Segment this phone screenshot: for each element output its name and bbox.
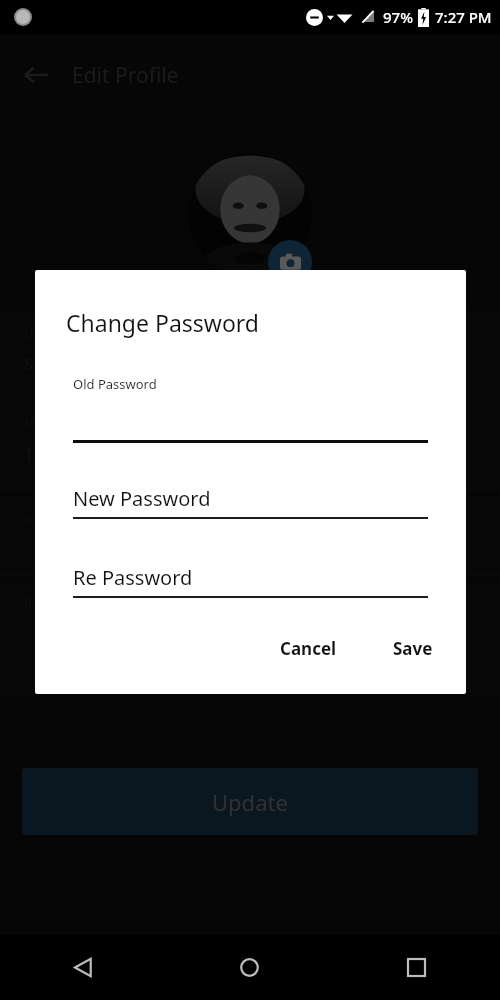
- button[interactable]: Cancel: [270, 628, 347, 669]
- staticText: New Password: [73, 485, 211, 512]
- staticText: 97%: [383, 7, 413, 27]
- button[interactable]: Password: [0, 580, 500, 692]
- staticText: Update: [212, 787, 288, 817]
- staticText: Password: [24, 594, 83, 612]
- staticText: 123456789: [24, 442, 112, 465]
- staticText: Re Password: [73, 564, 193, 591]
- button[interactable]: Home: [166, 935, 333, 1000]
- staticText: Cancel: [280, 637, 337, 660]
- staticText: Steven Hawking: [24, 352, 152, 375]
- staticText: Change Password: [66, 307, 259, 338]
- staticText: Edit Profile: [72, 61, 179, 90]
- staticText: Old Password: [73, 375, 157, 393]
- staticText: Username: [24, 324, 88, 342]
- button[interactable]: Change profile photo: [268, 240, 312, 284]
- button[interactable]: Username: [0, 310, 500, 396]
- staticText: Mobile: [24, 414, 66, 432]
- staticText: 7:27 PM: [435, 7, 492, 27]
- button[interactable]: Back: [0, 46, 72, 104]
- button[interactable]: Back: [0, 935, 166, 1000]
- button[interactable]: Update: [22, 768, 478, 835]
- staticText: Save: [393, 637, 433, 660]
- button[interactable]: Profile photo: [188, 153, 312, 277]
- staticText: Gender: [24, 510, 70, 528]
- button[interactable]: Mobile: [0, 400, 500, 490]
- button[interactable]: Gender: [0, 496, 500, 576]
- button[interactable]: Save: [383, 628, 443, 669]
- button[interactable]: Recent apps: [333, 935, 500, 1000]
